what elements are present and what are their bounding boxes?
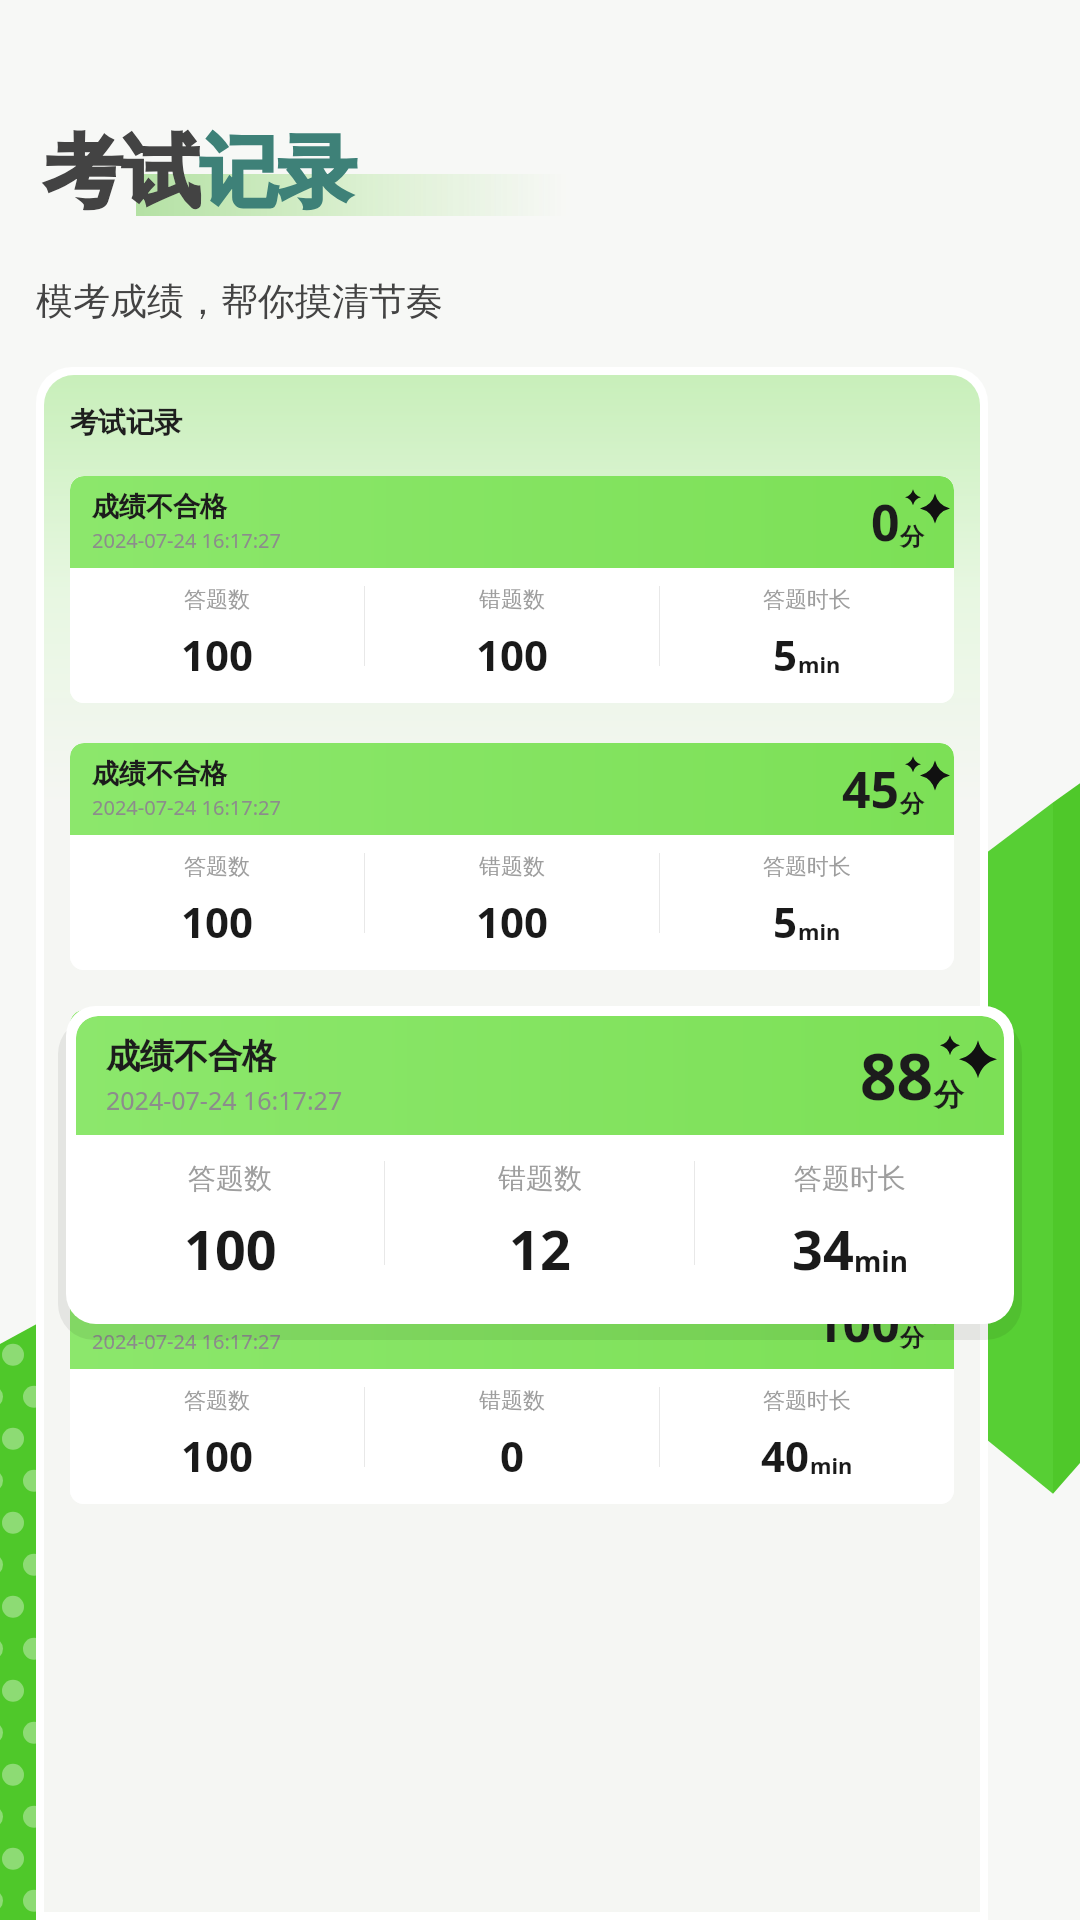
staticText: 成绩合格 [92, 1291, 200, 1325]
staticText: 100 [181, 626, 254, 683]
staticText: 答题时长 [763, 1120, 851, 1148]
staticText: 考试记录 [70, 405, 182, 440]
staticText: 分 [900, 522, 924, 552]
staticText: 答题数 [184, 1387, 250, 1415]
staticText: 模考成绩，帮你摸清节奏 [36, 278, 443, 325]
button[interactable]: 成绩不合格 [70, 476, 954, 703]
staticText: 答题时长 [794, 1161, 906, 1196]
staticText: 2024-07-24 16:17:27 [92, 527, 281, 554]
staticText: 70 [842, 1022, 900, 1090]
staticText: 成绩不合格 [106, 1035, 276, 1078]
staticText: 100 [181, 1427, 254, 1484]
staticText: 成绩不合格 [92, 490, 227, 524]
staticText: min [854, 1242, 908, 1280]
staticText: 45 [842, 755, 900, 823]
staticText: 成绩不合格 [92, 1024, 227, 1058]
staticText: 5 [773, 893, 798, 950]
staticText: 成绩不合格 [92, 757, 227, 791]
staticText: min [798, 916, 841, 946]
staticText: 100 [184, 1212, 277, 1286]
staticText: 2024-07-24 16:17:27 [106, 1083, 343, 1117]
staticText: 错题数 [498, 1161, 582, 1196]
staticText: 分 [900, 1323, 924, 1353]
staticText: 40 [761, 1427, 810, 1484]
staticText: 分 [900, 789, 924, 819]
button[interactable]: 成绩不合格 [76, 1016, 1004, 1314]
staticText: 20 [761, 1160, 810, 1217]
staticText: 30 [488, 1160, 537, 1217]
staticText: 0 [871, 488, 900, 556]
staticText: 考试 [44, 124, 200, 222]
staticText: min [798, 649, 841, 679]
button[interactable]: 成绩不合格 [70, 743, 954, 970]
staticText: 5 [773, 626, 798, 683]
staticText: 12 [509, 1212, 571, 1286]
staticText: min [810, 1183, 853, 1213]
staticText: 答题时长 [763, 853, 851, 881]
staticText: 34 [792, 1212, 854, 1286]
staticText: 分 [934, 1076, 964, 1114]
staticText: 88 [860, 1032, 934, 1119]
staticText: 100 [476, 893, 549, 950]
staticText: 100 [181, 1160, 254, 1217]
staticText: 答题时长 [763, 1387, 851, 1415]
staticText: 2024-07-24 16:17:27 [92, 1328, 281, 1355]
staticText: 答题时长 [763, 586, 851, 614]
staticText: 错题数 [479, 1387, 545, 1415]
staticText: 答题数 [188, 1161, 272, 1196]
staticText: 记录 [200, 124, 356, 222]
staticText: 答题数 [184, 586, 250, 614]
staticText: 100 [476, 626, 549, 683]
staticText: 答题数 [184, 1120, 250, 1148]
staticText: 100 [181, 893, 254, 950]
staticText: 0 [500, 1427, 525, 1484]
staticText: 2024-07-24 16:17:27 [92, 794, 281, 821]
staticText: 错题数 [479, 853, 545, 881]
button[interactable]: 成绩不合格 [70, 1010, 954, 1237]
staticText: 错题数 [479, 586, 545, 614]
staticText: 答题数 [184, 853, 250, 881]
button[interactable]: 成绩合格 [70, 1277, 954, 1504]
staticText: min [810, 1450, 853, 1480]
staticText: 2024-07-24 16:17:27 [92, 1061, 281, 1088]
staticText: 错题数 [479, 1120, 545, 1148]
staticText: 100 [814, 1289, 900, 1357]
staticText: 分 [900, 1056, 924, 1086]
